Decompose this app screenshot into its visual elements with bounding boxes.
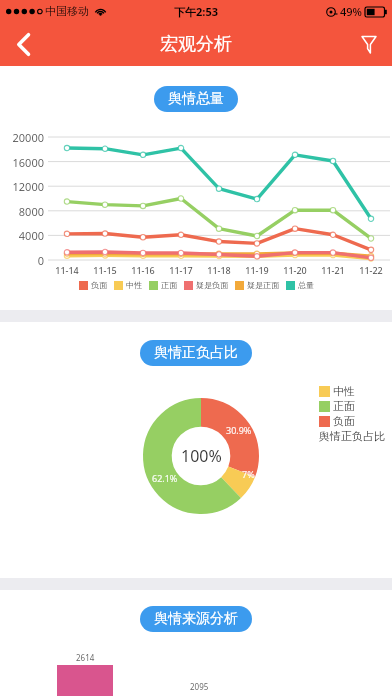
staticText: 11-15 xyxy=(87,264,123,276)
staticText: 中国移动 xyxy=(45,4,89,18)
staticText: 49% xyxy=(340,4,362,19)
staticText: 11-19 xyxy=(239,264,275,276)
staticText: 11-18 xyxy=(201,264,237,276)
staticText: 总量 xyxy=(298,280,314,290)
staticText: 100% xyxy=(181,445,222,467)
staticText: 中性 xyxy=(126,280,142,290)
staticText: 疑是负面 xyxy=(196,280,228,290)
staticText: 舆情正负占比 xyxy=(154,344,238,362)
staticText: 12000 xyxy=(0,179,44,194)
staticText: 下午2:53 xyxy=(174,4,218,19)
staticText: 11-14 xyxy=(49,264,85,276)
staticText: 4000 xyxy=(0,228,44,243)
button[interactable]: 舆情来源分析 xyxy=(140,606,252,632)
button[interactable]: 舆情正负占比 xyxy=(140,340,252,366)
staticText: 舆情正负占比 xyxy=(319,429,385,443)
button[interactable]: 舆情总量 xyxy=(154,86,238,112)
button[interactable]: Back xyxy=(0,22,46,66)
staticText: 11-22 xyxy=(353,264,389,276)
staticText: 正面 xyxy=(333,399,355,413)
staticText: 62.1% xyxy=(152,472,178,484)
staticText: 8000 xyxy=(0,204,44,219)
staticText: 舆情总量 xyxy=(168,90,224,108)
staticText: 舆情来源分析 xyxy=(154,610,238,628)
staticText: 0 xyxy=(0,253,44,268)
staticText: 30.9% xyxy=(226,424,252,436)
staticText: 11-21 xyxy=(315,264,351,276)
staticText: 2095 xyxy=(190,681,209,692)
staticText: 11-20 xyxy=(277,264,313,276)
staticText: 负面 xyxy=(91,280,107,290)
staticText: 正面 xyxy=(161,280,177,290)
staticText: 11-16 xyxy=(125,264,161,276)
staticText: 疑是正面 xyxy=(247,280,279,290)
staticText: 中性 xyxy=(333,384,355,398)
staticText: 宏观分析 xyxy=(160,33,232,56)
staticText: 16000 xyxy=(0,155,44,170)
staticText: 20000 xyxy=(0,130,44,145)
staticText: 7% xyxy=(242,468,255,480)
button[interactable]: Filter xyxy=(346,22,392,66)
staticText: 11-17 xyxy=(163,264,199,276)
staticText: 负面 xyxy=(333,414,355,428)
staticText: 2614 xyxy=(76,652,95,663)
